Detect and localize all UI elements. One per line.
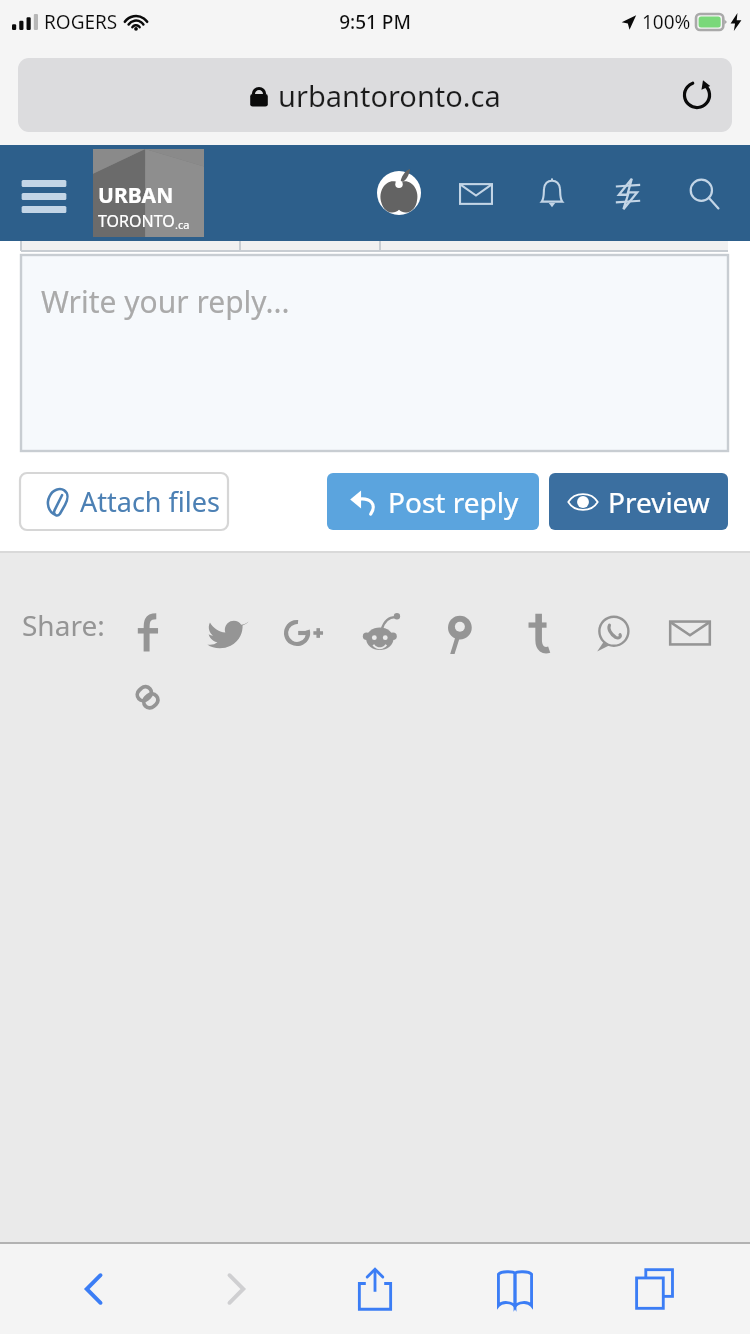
staticText: urbantoronto.ca — [278, 76, 501, 115]
button[interactable]: Post reply — [327, 473, 539, 530]
button[interactable]: Forward — [190, 1247, 280, 1331]
button[interactable]: Preview — [549, 473, 728, 530]
button[interactable]: Reddit — [343, 599, 420, 667]
button[interactable]: Pinterest — [420, 599, 497, 667]
button[interactable]: Search — [679, 169, 728, 218]
staticText: TORONTO — [98, 210, 175, 232]
button[interactable]: WhatsApp — [574, 599, 651, 667]
button[interactable]: Back — [50, 1247, 140, 1331]
button[interactable]: Activity — [603, 169, 652, 218]
button[interactable]: Tabs — [610, 1247, 700, 1331]
staticText: .ca — [175, 217, 190, 232]
button[interactable]: urbantoronto.ca — [18, 58, 732, 132]
staticText: Write your reply... — [41, 281, 290, 322]
staticText: 9:51 PM — [339, 9, 411, 35]
staticText: URBAN — [98, 181, 174, 210]
button[interactable]: Twitter — [189, 599, 266, 667]
button[interactable]: Copy link — [112, 667, 189, 735]
button[interactable]: Share — [330, 1247, 420, 1331]
button[interactable]: Account — [374, 168, 424, 218]
button[interactable]: Email — [651, 599, 728, 667]
staticText: ROGERS — [44, 9, 118, 35]
button[interactable]: Tumblr — [497, 599, 574, 667]
button[interactable]: Bookmarks — [470, 1247, 560, 1331]
button[interactable]: Messages — [451, 169, 500, 218]
button[interactable]: UrbanToronto home — [93, 149, 204, 237]
staticText: Share: — [22, 606, 105, 644]
button[interactable]: Facebook — [112, 599, 189, 667]
button[interactable]: Write your reply... — [21, 255, 728, 451]
button[interactable]: Attach files — [20, 473, 242, 530]
button[interactable]: Menu — [18, 170, 70, 216]
button[interactable]: Alerts — [527, 169, 576, 218]
staticText: Post reply — [388, 483, 519, 521]
staticText: Attach files — [80, 483, 220, 520]
staticText: Preview — [608, 483, 710, 521]
button[interactable]: Reload — [678, 76, 716, 114]
button[interactable]: Google Plus — [266, 599, 343, 667]
staticText: 100% — [642, 9, 691, 35]
